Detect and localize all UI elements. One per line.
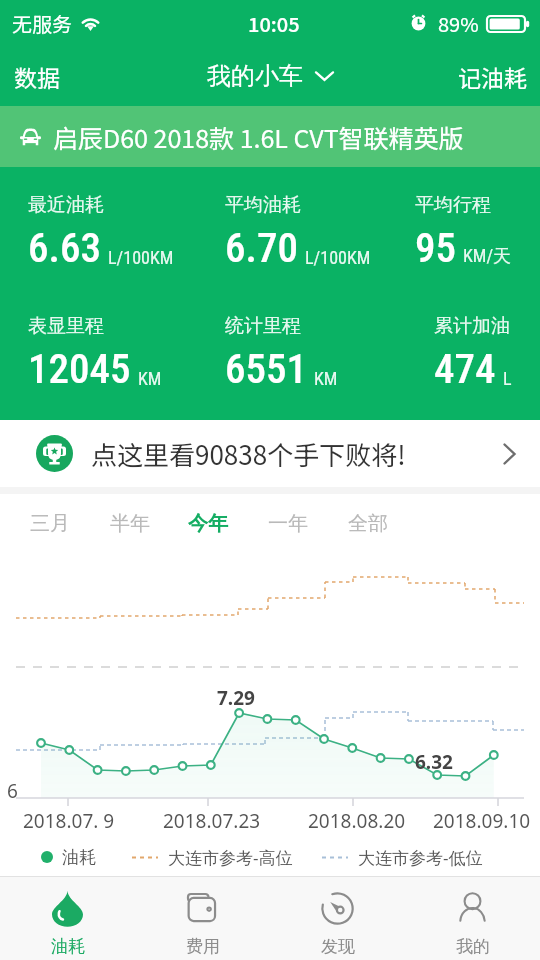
- staticText: 启辰D60 2018款 1.6L CVT智联精英版: [53, 119, 464, 155]
- staticText: 6: [7, 778, 18, 804]
- staticText: 点这里看90838个手下败将!: [91, 435, 406, 473]
- button[interactable]: 记油耗: [442, 50, 540, 103]
- staticText: 一年: [268, 511, 308, 536]
- button[interactable]: Discover: [270, 877, 405, 960]
- button[interactable]: 点这里看90838个手下败将!: [0, 420, 540, 487]
- button[interactable]: 一年: [249, 494, 327, 553]
- staticText: 474: [434, 345, 496, 393]
- staticText: 我的小车: [207, 61, 303, 91]
- button[interactable]: Fuel consumption: [0, 877, 135, 960]
- button[interactable]: 半年: [91, 494, 169, 553]
- staticText: 数据: [14, 60, 60, 93]
- staticText: 无服务: [12, 9, 72, 38]
- button[interactable]: 今年: [169, 494, 247, 553]
- staticText: 今年: [188, 511, 228, 536]
- staticText: 89%: [438, 9, 479, 38]
- staticText: 6551: [225, 345, 307, 393]
- staticText: 费用: [186, 936, 220, 957]
- staticText: 95: [415, 224, 456, 272]
- staticText: 大连市参考-高位: [168, 846, 293, 869]
- staticText: 三月: [30, 511, 70, 536]
- staticText: 累计加油: [434, 314, 510, 338]
- button[interactable]: 全部: [329, 494, 407, 553]
- staticText: KM: [314, 368, 338, 389]
- button[interactable]: 我的小车: [201, 55, 340, 97]
- button[interactable]: Profile: [405, 877, 540, 960]
- staticText: 记油耗: [458, 60, 527, 93]
- staticText: 12045: [28, 345, 131, 393]
- staticText: 10:05: [248, 9, 300, 38]
- staticText: 6.70: [225, 224, 298, 272]
- staticText: KM: [138, 368, 162, 389]
- staticText: 油耗: [62, 847, 96, 868]
- staticText: 6.63: [28, 224, 101, 272]
- staticText: 7.29: [217, 685, 255, 711]
- staticText: KM/天: [463, 245, 512, 268]
- staticText: 大连市参考-低位: [358, 846, 483, 869]
- staticText: 平均行程: [415, 193, 491, 217]
- staticText: 我的: [456, 936, 490, 957]
- staticText: 全部: [348, 511, 388, 536]
- staticText: 油耗: [51, 936, 85, 957]
- staticText: 6.32: [415, 749, 453, 775]
- staticText: 半年: [110, 511, 150, 536]
- staticText: 发现: [321, 936, 355, 957]
- staticText: 2018.07. 9: [23, 808, 115, 834]
- button[interactable]: 三月: [11, 494, 89, 553]
- staticText: 平均油耗: [225, 193, 301, 217]
- staticText: 统计里程: [225, 314, 301, 338]
- button[interactable]: Expenses: [135, 877, 270, 960]
- staticText: L/100KM: [305, 247, 371, 268]
- staticText: L/100KM: [108, 247, 174, 268]
- staticText: 2018.08.20: [308, 808, 406, 834]
- staticText: 最近油耗: [28, 193, 104, 217]
- button[interactable]: 数据: [0, 50, 76, 103]
- staticText: 表显里程: [28, 314, 104, 338]
- button[interactable]: 启辰D60 2018款 1.6L CVT智联精英版: [0, 106, 540, 167]
- staticText: L: [503, 368, 512, 389]
- staticText: 2018.07.23: [163, 808, 261, 834]
- staticText: 2018.09.10: [433, 808, 531, 834]
